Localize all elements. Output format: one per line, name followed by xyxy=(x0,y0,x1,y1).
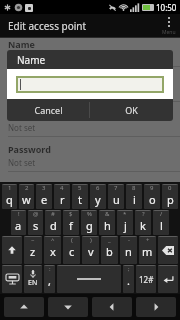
staticText: Username xyxy=(8,108,55,120)
button[interactable]: s xyxy=(28,210,43,235)
button[interactable]: c xyxy=(63,236,80,264)
button[interactable]: y xyxy=(90,184,106,209)
staticText: 5 xyxy=(78,184,82,192)
staticText: g xyxy=(86,218,93,233)
button[interactable]: . xyxy=(123,265,134,293)
staticText: s xyxy=(33,218,39,233)
staticText: Not set xyxy=(8,87,36,98)
staticText: Edit access point xyxy=(8,19,87,33)
button[interactable]: k xyxy=(135,210,151,235)
staticText: d xyxy=(50,218,57,233)
button[interactable]: l xyxy=(153,210,169,235)
staticText: c xyxy=(69,244,75,259)
staticText: ! xyxy=(18,210,20,218)
button[interactable]: Left xyxy=(92,297,132,317)
staticText: ( xyxy=(71,236,73,244)
button[interactable]: e xyxy=(36,184,52,209)
staticText: m xyxy=(142,244,153,259)
staticText: Name xyxy=(17,53,46,67)
button[interactable]: Shift xyxy=(2,236,22,264)
button[interactable]: m xyxy=(139,236,156,264)
staticText: 0 xyxy=(168,184,172,192)
staticText: h xyxy=(104,218,111,233)
staticText: & xyxy=(105,210,110,218)
button[interactable]: j xyxy=(117,210,133,235)
button[interactable]: t xyxy=(72,184,88,209)
button[interactable]: z xyxy=(24,236,42,264)
staticText: 9 xyxy=(150,184,154,192)
button[interactable]: Symbols xyxy=(136,265,156,293)
staticText: v xyxy=(88,244,94,259)
staticText: Password xyxy=(8,73,51,85)
staticText: 1 xyxy=(8,184,12,192)
button[interactable]: n xyxy=(120,236,137,264)
staticText: w xyxy=(22,192,31,207)
staticText: / xyxy=(160,210,163,218)
button[interactable]: g xyxy=(81,210,97,235)
staticText: ) xyxy=(90,236,92,244)
button[interactable]: Space xyxy=(57,265,121,293)
staticText: p xyxy=(167,192,174,207)
staticText: 4 xyxy=(60,184,64,192)
staticText: , xyxy=(48,273,51,288)
staticText: @ xyxy=(33,210,39,218)
button[interactable]: Menu xyxy=(158,14,180,38)
button[interactable]: Voice input EN xyxy=(24,265,42,293)
staticText: Not set xyxy=(8,122,36,133)
button[interactable]: o xyxy=(144,184,160,209)
button[interactable]: Cancel xyxy=(7,99,89,121)
staticText: e xyxy=(41,192,48,207)
button[interactable]: Enter xyxy=(158,265,178,293)
button[interactable]: p xyxy=(162,184,178,209)
staticText: u xyxy=(113,192,120,207)
staticText: n xyxy=(125,244,132,259)
button[interactable]: u xyxy=(108,184,124,209)
button[interactable]: d xyxy=(45,210,61,235)
staticText: 6 xyxy=(96,184,100,192)
staticText: + xyxy=(146,236,150,244)
staticText: ? xyxy=(142,210,145,218)
staticText: Not set xyxy=(8,52,36,63)
staticText: r xyxy=(60,192,65,207)
button[interactable]: OK xyxy=(90,99,173,121)
staticText: Name xyxy=(8,38,35,50)
staticText: i xyxy=(133,192,136,207)
button[interactable]: x xyxy=(44,236,61,264)
button[interactable]: Keyboard settings xyxy=(2,265,22,293)
staticText: % xyxy=(87,210,92,218)
staticText: * xyxy=(123,210,127,218)
staticText: ~ xyxy=(31,236,35,244)
button[interactable]: r xyxy=(54,184,70,209)
button[interactable]: f xyxy=(63,210,79,235)
button[interactable] xyxy=(16,76,164,93)
button[interactable]: Down xyxy=(48,297,88,317)
staticText: Menu xyxy=(162,29,176,36)
button[interactable]: w xyxy=(19,184,34,209)
staticText: b xyxy=(106,244,113,259)
button[interactable]: a xyxy=(11,210,26,235)
staticText: 2 xyxy=(25,184,29,192)
staticText: # xyxy=(51,210,55,218)
button[interactable]: Backspace xyxy=(158,236,178,264)
staticText: l xyxy=(160,218,163,233)
staticText: $ xyxy=(69,210,73,218)
button[interactable]: Up xyxy=(4,297,44,317)
button[interactable]: h xyxy=(99,210,115,235)
staticText: EN xyxy=(28,278,38,288)
button[interactable]: b xyxy=(101,236,118,264)
staticText: OK xyxy=(125,104,138,116)
staticText: j xyxy=(124,218,127,233)
button[interactable]: , xyxy=(44,265,55,293)
staticText: Password xyxy=(8,143,51,155)
staticText: f xyxy=(69,218,73,233)
staticText: 3 xyxy=(42,184,46,192)
button[interactable]: q xyxy=(2,184,17,209)
button[interactable]: Right xyxy=(136,297,176,317)
staticText: z xyxy=(30,244,36,259)
staticText: t xyxy=(78,192,82,207)
staticText: 7 xyxy=(114,184,118,192)
staticText: Cancel xyxy=(34,104,63,116)
button[interactable]: v xyxy=(82,236,99,264)
staticText: 10:50 xyxy=(156,2,177,13)
button[interactable]: i xyxy=(126,184,142,209)
